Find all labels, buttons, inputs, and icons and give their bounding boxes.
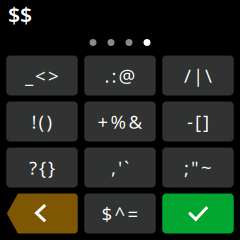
staticText: -[] (187, 109, 209, 134)
staticText: $^= (101, 201, 138, 226)
staticText: .:@ (104, 63, 135, 88)
staticText: ;"~ (184, 155, 212, 180)
button[interactable]: ?{} (6, 147, 78, 187)
staticText: /|\ (184, 63, 212, 88)
staticText: !() (31, 109, 52, 134)
staticText: +%& (97, 109, 142, 134)
staticText: $$ (8, 0, 32, 29)
button[interactable]: ;"~ (162, 147, 234, 187)
button[interactable]: _<> (6, 55, 78, 95)
button[interactable]: Done (162, 193, 234, 233)
staticText: ,'` (111, 155, 129, 180)
button[interactable]: $^= (84, 193, 156, 233)
button[interactable]: Delete (6, 193, 78, 233)
button[interactable]: ,'` (84, 147, 156, 187)
button[interactable]: !() (6, 101, 78, 141)
staticText: _<> (25, 63, 59, 88)
button[interactable]: /|\ (162, 55, 234, 95)
button[interactable]: .:@ (84, 55, 156, 95)
button[interactable]: -[] (162, 101, 234, 141)
staticText: ?{} (29, 155, 55, 180)
button[interactable]: +%& (84, 101, 156, 141)
